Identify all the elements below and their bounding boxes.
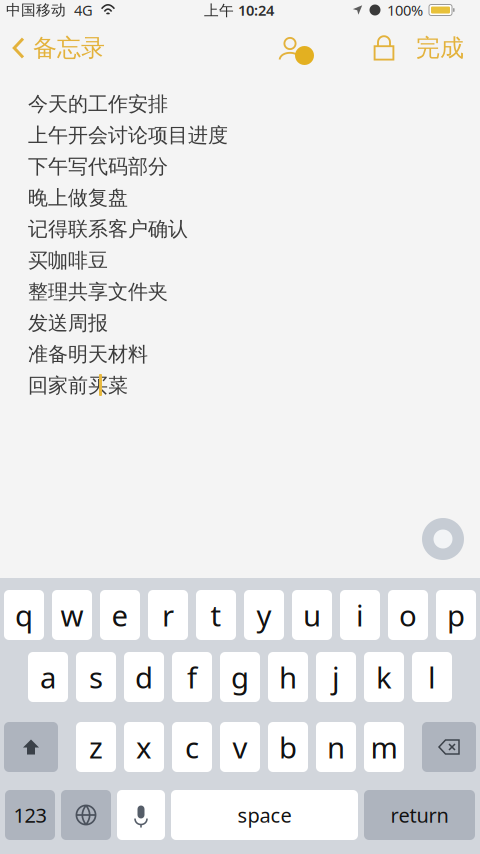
button[interactable]: g	[220, 652, 260, 702]
button[interactable]: x	[124, 722, 164, 772]
staticText: 中国移动	[6, 1, 66, 19]
staticText: a	[40, 657, 56, 696]
staticText: u	[303, 595, 321, 634]
staticText: p	[447, 595, 465, 634]
button[interactable]: l	[412, 652, 452, 702]
button[interactable]: r	[148, 590, 188, 640]
staticText: g	[231, 657, 249, 696]
staticText: w	[60, 595, 83, 634]
button[interactable]: k	[364, 652, 404, 702]
staticText: 4G	[74, 0, 93, 20]
button[interactable]: q	[4, 590, 44, 640]
button[interactable]: v	[220, 722, 260, 772]
button[interactable]: w	[52, 590, 92, 640]
staticText: n	[327, 727, 345, 766]
staticText: return	[390, 802, 448, 828]
staticText: k	[376, 657, 392, 696]
staticText: 发送周报	[28, 311, 108, 335]
button[interactable]: 完成	[412, 26, 468, 70]
staticText: t	[210, 595, 221, 634]
staticText: 上午开会讨论项目进度	[28, 123, 228, 148]
staticText: e	[111, 595, 128, 634]
staticText: j	[332, 657, 340, 696]
button[interactable]: f	[172, 652, 212, 702]
staticText: v	[232, 727, 247, 766]
button[interactable]: s	[76, 652, 116, 702]
staticText: b	[279, 727, 297, 766]
button[interactable]: o	[388, 590, 428, 640]
button[interactable]: Switch keyboard	[61, 790, 111, 840]
button[interactable]: c	[172, 722, 212, 772]
button[interactable]: m	[364, 722, 404, 772]
staticText: 晚上做复盘	[28, 186, 128, 210]
button[interactable]: Dictation	[117, 790, 165, 840]
button[interactable]: Dictate	[422, 518, 464, 560]
staticText: z	[89, 727, 103, 766]
staticText: c	[185, 727, 199, 766]
staticText: d	[135, 657, 153, 696]
button[interactable]: b	[268, 722, 308, 772]
button[interactable]: p	[436, 590, 476, 640]
button[interactable]: space	[171, 790, 358, 840]
button[interactable]: a	[28, 652, 68, 702]
staticText: x	[136, 727, 152, 766]
button[interactable]: t	[196, 590, 236, 640]
staticText: 买咖啡豆	[28, 248, 108, 273]
staticText: 上午 10:24	[204, 0, 274, 20]
staticText: q	[15, 595, 33, 634]
button[interactable]: Delete	[422, 722, 476, 772]
button[interactable]: 备忘录	[0, 26, 113, 70]
staticText: f	[187, 657, 197, 696]
staticText: o	[399, 595, 417, 634]
staticText: 今天的工作安排	[28, 92, 168, 116]
staticText: i	[356, 595, 364, 634]
staticText: 记得联系客户确认	[28, 217, 188, 241]
staticText: 100%	[387, 0, 423, 20]
staticText: 完成	[416, 33, 464, 63]
button[interactable]: e	[100, 590, 140, 640]
button[interactable]: Shift	[4, 722, 58, 772]
staticText: 123	[13, 802, 46, 828]
staticText: 整理共享文件夹	[28, 279, 168, 304]
staticText: h	[279, 657, 297, 696]
button[interactable]: u	[292, 590, 332, 640]
staticText: y	[256, 595, 271, 634]
staticText: m	[370, 727, 397, 766]
button[interactable]: return	[364, 790, 475, 840]
button[interactable]: Lock note	[362, 26, 406, 70]
staticText: 回家前买菜	[28, 373, 128, 398]
button[interactable]: d	[124, 652, 164, 702]
staticText: space	[237, 802, 291, 828]
button[interactable]: z	[76, 722, 116, 772]
staticText: r	[162, 595, 174, 634]
staticText: 下午写代码部分	[28, 154, 168, 179]
staticText: 备忘录	[33, 33, 105, 63]
staticText: s	[89, 657, 103, 696]
button[interactable]: y	[244, 590, 284, 640]
button[interactable]: 123	[5, 790, 55, 840]
button[interactable]: j	[316, 652, 356, 702]
staticText: l	[428, 657, 436, 696]
button[interactable]: i	[340, 590, 380, 640]
staticText: 准备明天材料	[28, 342, 148, 367]
button[interactable]: n	[316, 722, 356, 772]
button[interactable]: h	[268, 652, 308, 702]
button[interactable]: Share	[262, 26, 318, 70]
